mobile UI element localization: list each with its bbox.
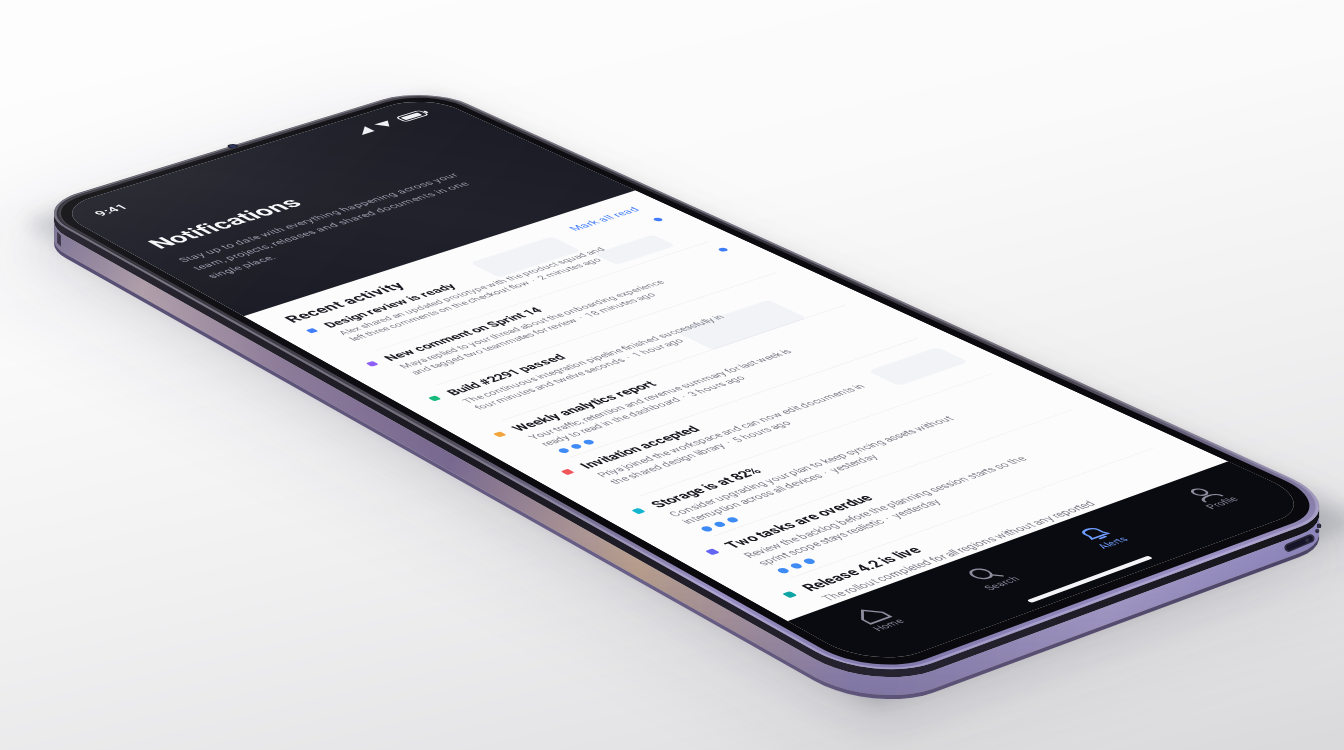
- button[interactable]: Search: [899, 539, 1103, 627]
- button[interactable]: Build #2291 passed: [400, 269, 877, 441]
- button[interactable]: Release 4.2 is live: [751, 443, 1276, 645]
- button[interactable]: Two tasks are overdue: [675, 406, 1189, 601]
- button[interactable]: Profile: [1119, 460, 1322, 544]
- button[interactable]: Design review is ready: [279, 208, 740, 369]
- button[interactable]: Alerts: [1010, 499, 1213, 585]
- button[interactable]: Mark all read: [545, 200, 659, 240]
- button[interactable]: Invitation accepted: [532, 334, 1027, 517]
- button[interactable]: Weekly analytics report: [464, 301, 950, 478]
- button[interactable]: New comment on Sprint 14: [338, 238, 807, 404]
- button[interactable]: Storage is at 82%: [602, 369, 1107, 558]
- button[interactable]: Home: [785, 579, 989, 670]
